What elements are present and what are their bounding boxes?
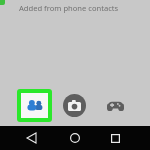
button[interactable]: Back — [22, 126, 40, 150]
button[interactable]: Contacts — [17, 89, 52, 122]
staticText: Added from phone contacts — [19, 3, 119, 13]
button[interactable]: Recent apps — [106, 126, 124, 150]
button[interactable]: Games — [103, 94, 127, 116]
button[interactable]: Camera — [63, 94, 86, 117]
button[interactable]: Home — [65, 126, 85, 150]
